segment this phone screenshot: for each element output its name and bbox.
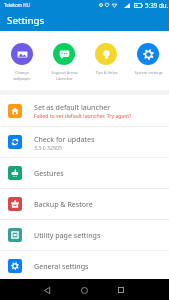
staticText: Change wallpaper [13, 70, 31, 81]
button[interactable]: Check for updates [0, 127, 169, 157]
staticText: Failed to set default launcher. Try agai… [34, 112, 132, 119]
staticText: Support Arrow Launcher [51, 70, 78, 81]
staticText: 5:39 du. [145, 1, 169, 9]
staticText: Utility page settings [34, 230, 101, 240]
button[interactable]: Utility page settings [0, 220, 169, 250]
staticText: Tips & Helps [95, 70, 118, 75]
button[interactable]: Set as default launcher [0, 95, 169, 126]
button[interactable]: Tips & Helps [85, 31, 127, 75]
button[interactable]: General settings [0, 251, 169, 281]
staticText: Check for updates [34, 134, 95, 144]
staticText: Set as default launcher [34, 102, 111, 112]
staticText: Settings [7, 14, 45, 27]
button[interactable]: Home [74, 280, 94, 300]
button[interactable]: Gestures [0, 158, 169, 188]
button[interactable]: Support Arrow Launcher [43, 31, 85, 81]
button[interactable]: Recents [111, 280, 131, 300]
button[interactable]: Back [37, 280, 57, 300]
button[interactable]: Backup & Restore [0, 189, 169, 219]
staticText: General settings [34, 261, 89, 271]
button[interactable]: Change wallpaper [0, 31, 43, 81]
staticText: 3.3.0.32905 [34, 144, 62, 151]
staticText: System settings [134, 70, 163, 75]
staticText: Backup & Restore [34, 199, 93, 209]
staticText: Telekom HU [4, 2, 31, 8]
button[interactable]: System settings [127, 31, 169, 75]
staticText: Gestures [34, 168, 64, 178]
